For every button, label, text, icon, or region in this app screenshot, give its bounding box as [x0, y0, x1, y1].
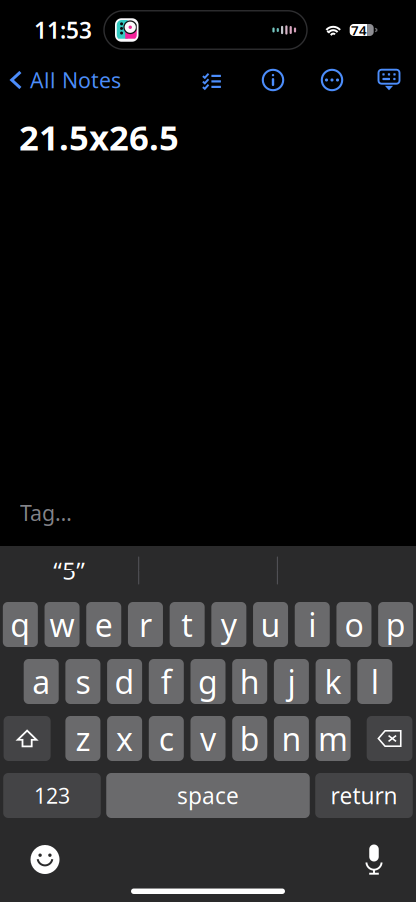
button[interactable]: Hide Keyboard	[367, 60, 411, 100]
staticText: “5”	[53, 555, 85, 586]
staticText: r	[139, 603, 152, 646]
button[interactable]: j	[274, 659, 309, 704]
button[interactable]: r	[128, 602, 163, 647]
button[interactable]: v	[190, 716, 225, 761]
button[interactable]: Info	[251, 60, 295, 100]
button[interactable]: o	[336, 602, 371, 647]
button[interactable]: x	[107, 716, 142, 761]
button[interactable]: 123	[3, 773, 101, 818]
button[interactable]: c	[149, 716, 184, 761]
staticText: j	[287, 660, 295, 703]
button[interactable]: g	[190, 659, 225, 704]
staticText: v	[200, 717, 216, 760]
button[interactable]: n	[274, 716, 309, 761]
staticText: return	[330, 780, 397, 810]
button[interactable]: a	[24, 659, 59, 704]
staticText: e	[95, 603, 113, 646]
button[interactable]: Delete	[367, 716, 412, 761]
button[interactable]: b	[232, 716, 267, 761]
staticText: x	[116, 717, 133, 760]
button[interactable]: More	[310, 60, 354, 100]
staticText: q	[10, 603, 30, 646]
staticText: o	[344, 603, 363, 646]
button[interactable]: k	[316, 659, 351, 704]
button[interactable]: t	[170, 602, 205, 647]
staticText: a	[32, 660, 50, 703]
button[interactable]: l	[357, 659, 392, 704]
button[interactable]: i	[295, 602, 330, 647]
button[interactable]: s	[65, 659, 100, 704]
staticText: 74	[351, 21, 367, 39]
staticText: y	[221, 603, 237, 646]
button[interactable]: All Notes	[0, 60, 127, 100]
button[interactable]: Emoji	[16, 835, 74, 883]
staticText: s	[75, 660, 90, 703]
button[interactable]: Dictate	[345, 835, 403, 883]
button[interactable]: e	[86, 602, 121, 647]
staticText: space	[177, 780, 239, 810]
staticText: All Notes	[30, 66, 121, 94]
staticText: h	[240, 660, 260, 703]
staticText: b	[240, 717, 260, 760]
staticText: g	[198, 660, 218, 703]
staticText: 21.5x26.5	[19, 114, 179, 160]
staticText: p	[386, 603, 406, 646]
staticText: 123	[34, 781, 70, 810]
staticText: i	[308, 603, 316, 646]
staticText: n	[281, 717, 301, 760]
button[interactable]: w	[44, 602, 79, 647]
button[interactable]: d	[107, 659, 142, 704]
button[interactable]: z	[65, 716, 100, 761]
staticText: d	[115, 660, 135, 703]
staticText: Tag…	[20, 499, 72, 527]
staticText: 11:53	[34, 15, 92, 45]
button[interactable]: p	[378, 602, 413, 647]
button[interactable]: m	[316, 716, 351, 761]
staticText: t	[181, 603, 193, 646]
staticText: f	[161, 660, 172, 703]
button[interactable]: h	[232, 659, 267, 704]
button[interactable]: “5”	[0, 546, 139, 595]
button[interactable]: q	[3, 602, 38, 647]
button[interactable]: Shift	[4, 716, 51, 761]
button[interactable]: f	[149, 659, 184, 704]
button[interactable]: u	[253, 602, 288, 647]
button[interactable]: y	[211, 602, 246, 647]
staticText: m	[318, 717, 348, 760]
staticText: k	[325, 660, 342, 703]
button[interactable]: space	[106, 773, 310, 818]
staticText: w	[49, 603, 74, 646]
staticText: u	[260, 603, 280, 646]
staticText: z	[75, 717, 90, 760]
staticText: c	[159, 717, 174, 760]
staticText: l	[371, 660, 379, 703]
button[interactable]: Checklist	[190, 60, 234, 100]
button[interactable]: return	[315, 773, 413, 818]
